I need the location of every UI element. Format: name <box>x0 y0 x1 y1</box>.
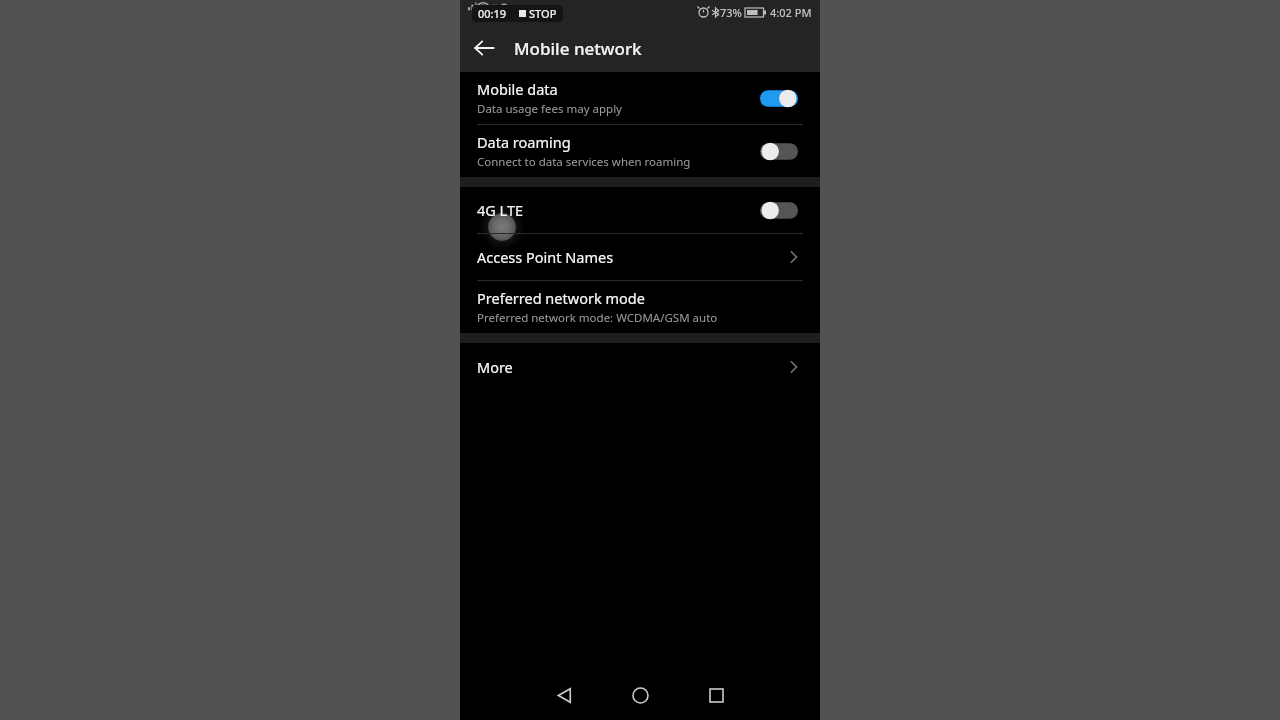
button[interactable]: Access Point Names <box>460 234 820 280</box>
button[interactable]: Back <box>526 670 602 720</box>
staticText: More <box>477 357 513 377</box>
button[interactable]: Data roaming <box>460 125 820 177</box>
button[interactable]: Mobile data <box>460 72 820 124</box>
button[interactable]: 4G LTE <box>460 187 820 233</box>
staticText: Data usage fees may apply <box>477 101 622 117</box>
button[interactable]: Toggle on <box>755 83 803 113</box>
staticText: Preferred network mode <box>477 288 645 308</box>
staticText: Mobile data <box>477 79 558 99</box>
button[interactable]: Toggle off <box>755 195 803 225</box>
staticText: Preferred network mode: WCDMA/GSM auto <box>477 310 718 326</box>
staticText: STOP <box>529 6 557 21</box>
staticText: Connect to data services when roaming <box>477 154 691 170</box>
button[interactable]: More <box>460 343 820 391</box>
button[interactable]: Preferred network mode <box>460 281 820 333</box>
staticText: Mobile network <box>514 37 642 60</box>
button[interactable]: Recent apps <box>678 670 754 720</box>
staticText: Data roaming <box>477 132 571 152</box>
staticText: 4G LTE <box>477 200 524 220</box>
staticText: 73% <box>720 5 742 20</box>
staticText: 00:19 <box>478 6 507 21</box>
button[interactable]: Toggle off <box>755 136 803 166</box>
button[interactable]: Home <box>602 670 678 720</box>
staticText: 4:02 PM <box>770 5 812 20</box>
button[interactable]: Back <box>460 24 508 72</box>
button[interactable]: Stop recording <box>478 6 557 21</box>
staticText: Access Point Names <box>477 247 614 267</box>
